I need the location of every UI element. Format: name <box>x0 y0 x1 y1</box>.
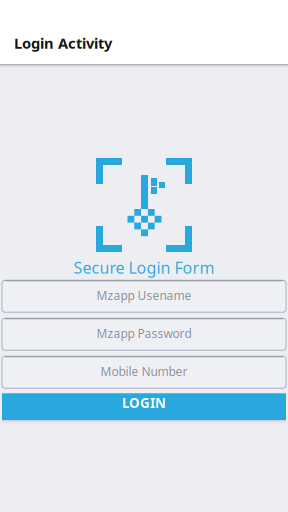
button[interactable]: Mobile Number <box>2 356 286 388</box>
staticText: Mzapp Usename <box>96 287 191 303</box>
button[interactable]: Mzapp Password <box>2 318 286 350</box>
button[interactable]: LOGIN <box>2 393 286 420</box>
staticText: LOGIN <box>122 394 166 412</box>
staticText: Login Activity <box>14 33 112 53</box>
staticText: Secure Login Form <box>73 257 214 278</box>
button[interactable]: Mzapp Usename <box>2 280 286 312</box>
staticText: Mzapp Password <box>96 325 191 341</box>
staticText: Mobile Number <box>100 363 187 379</box>
